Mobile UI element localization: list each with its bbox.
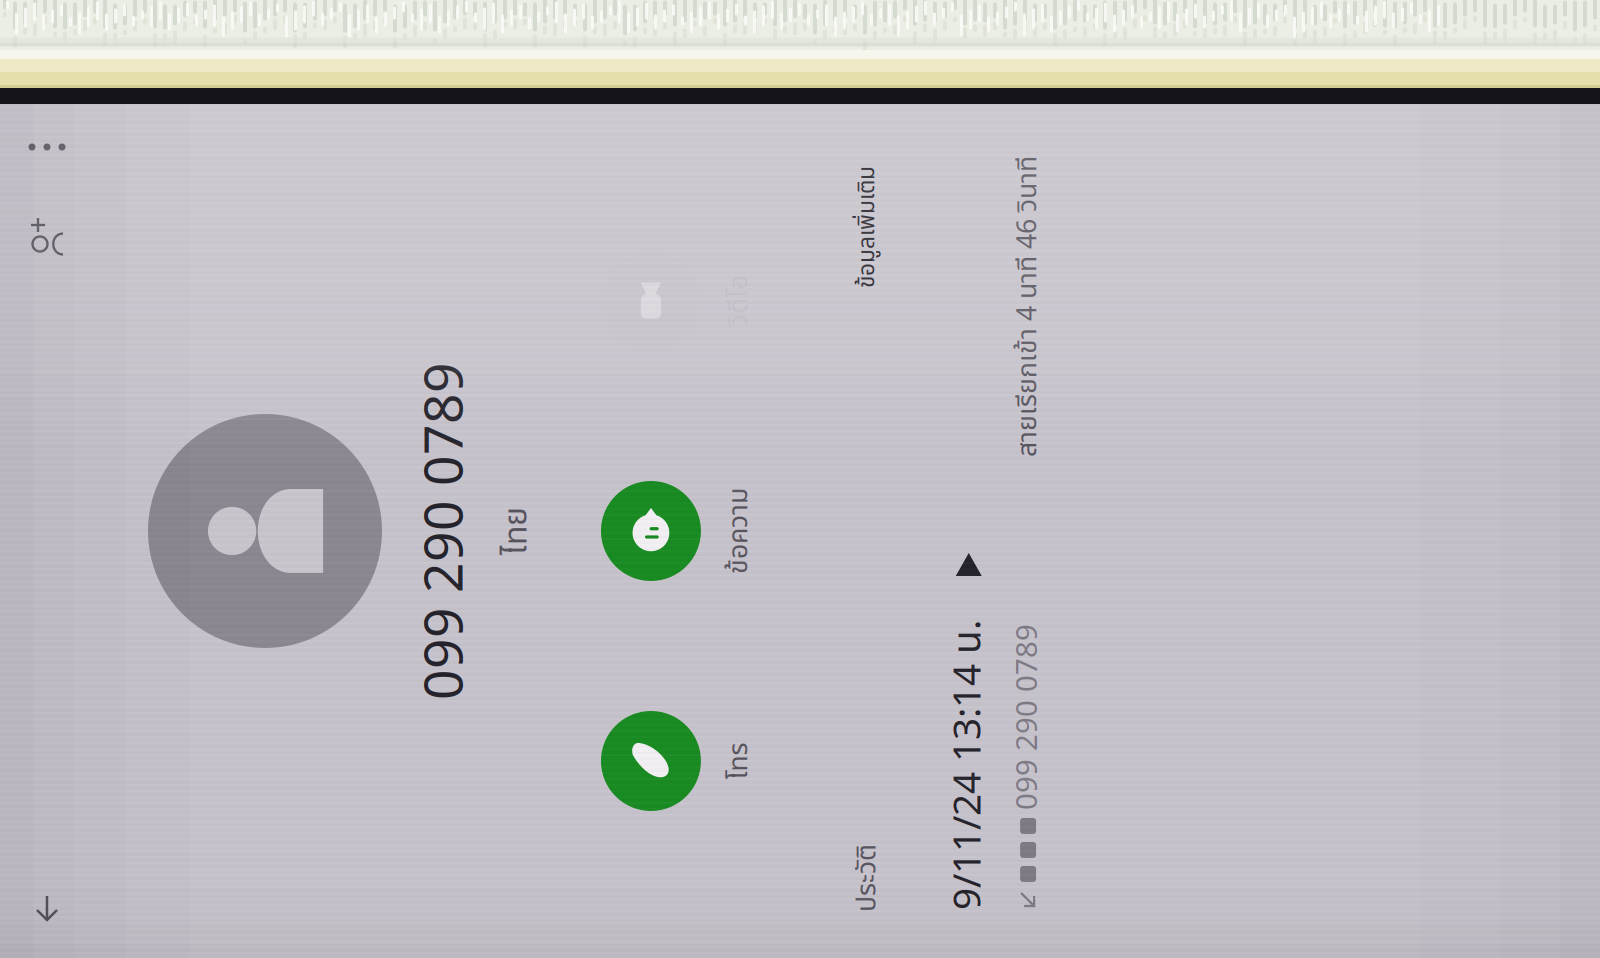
button[interactable]: ประวัติ [419, 570, 487, 626]
staticText: วิดีโอ [1004, 450, 1056, 490]
staticText: 9/11/24 13:14 น. [421, 670, 711, 729]
staticText: สายเรียกเข้า 4 นาที 46 วินาที [874, 739, 1175, 779]
button[interactable]: วิดีโอ [915, 332, 1145, 490]
staticText: ประวัติ [419, 578, 487, 618]
staticText: 099 290 0789 [631, 137, 969, 218]
button[interactable]: 9/11/24 13:14 น. [373, 662, 1227, 789]
button[interactable]: โทร [455, 332, 685, 490]
staticText: 099 290 0789 [521, 737, 707, 781]
